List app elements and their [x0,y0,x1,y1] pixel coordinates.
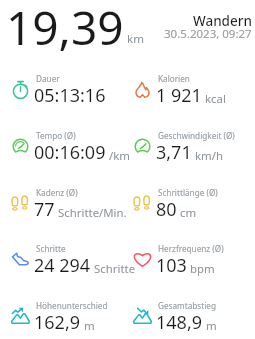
button[interactable]: Total descent [133,294,255,339]
button[interactable]: Elevation gain [11,294,133,339]
other: Duration [11,80,30,99]
staticText: Geschwindigkeit (Ø) [158,130,235,141]
staticText: 05:13:16 [34,83,106,108]
button[interactable]: Steps [11,237,133,294]
staticText: Kadenz (Ø) [36,187,78,198]
staticText: Schritte/Min. [58,205,127,221]
other: Total descent [133,307,152,326]
staticText: 30.5.2023, 09:27 [164,26,252,42]
staticText: cm [180,205,197,221]
staticText: Tempo (Ø) [36,130,76,141]
staticText: Schritte [94,261,136,277]
button[interactable]: Stride length [133,181,255,238]
staticText: bpm [190,261,215,277]
other: Steps [11,250,30,269]
button[interactable]: Calories [133,67,255,124]
staticText: Höhenunterschied [36,300,108,311]
staticText: km [127,31,144,47]
staticText: 162,9 [34,310,81,335]
button[interactable]: Duration [11,67,133,124]
staticText: Schritte [36,243,66,254]
other: Speed [133,137,152,156]
staticText: 1 921 [156,83,202,108]
staticText: 00:16:09 [34,140,106,165]
staticText: Dauer [36,73,60,84]
staticText: Kalorien [158,73,190,84]
staticText: 103 [156,253,187,278]
staticText: 24 294 [34,253,91,278]
staticText: Schrittlänge (Ø) [158,187,218,198]
staticText: 19,39 [6,0,124,59]
other: Heart rate [133,250,152,269]
staticText: Herzfrequenz (Ø) [158,243,224,254]
button[interactable]: Heart rate [133,237,255,294]
button[interactable]: Speed [133,124,255,181]
other: Calories [133,80,152,99]
staticText: /km [109,148,130,164]
staticText: m [206,318,217,334]
staticText: kcal [205,91,226,107]
staticText: Gesamtabstieg [158,300,216,311]
staticText: m [84,318,95,334]
staticText: 148,9 [156,310,203,335]
other: Elevation gain [11,307,30,326]
button[interactable]: Pace [11,124,133,181]
other: Cadence [11,194,30,213]
other: Stride length [133,194,152,213]
other: Pace [11,137,30,156]
staticText: 3,71 [156,140,192,165]
staticText: km/h [195,148,224,164]
staticText: 80 [156,197,177,222]
staticText: 77 [34,197,55,222]
staticText: Wandern [193,12,252,30]
button[interactable]: Cadence [11,181,133,238]
